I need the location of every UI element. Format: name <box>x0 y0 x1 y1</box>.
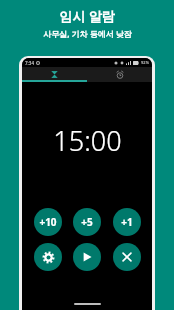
button[interactable]: Alarm tab <box>87 67 152 82</box>
staticText: 92% <box>141 60 149 65</box>
button[interactable]: Timer tab <box>22 67 87 82</box>
staticText: 15:00 <box>53 122 122 159</box>
button[interactable]: +1 <box>113 208 141 236</box>
button[interactable]: +10 <box>34 208 62 236</box>
staticText: +5 <box>81 215 93 229</box>
button[interactable]: Settings <box>34 243 62 271</box>
button[interactable]: Start <box>73 243 101 271</box>
button[interactable]: Cancel <box>113 243 141 271</box>
staticText: +1 <box>121 215 133 229</box>
staticText: 사무실, 기차 등에서 낮잠 <box>43 28 132 39</box>
button[interactable]: +5 <box>73 208 101 236</box>
staticText: +10 <box>39 215 57 229</box>
staticText: 7:34 <box>25 60 34 66</box>
staticText: 임시 알람 <box>59 7 115 25</box>
